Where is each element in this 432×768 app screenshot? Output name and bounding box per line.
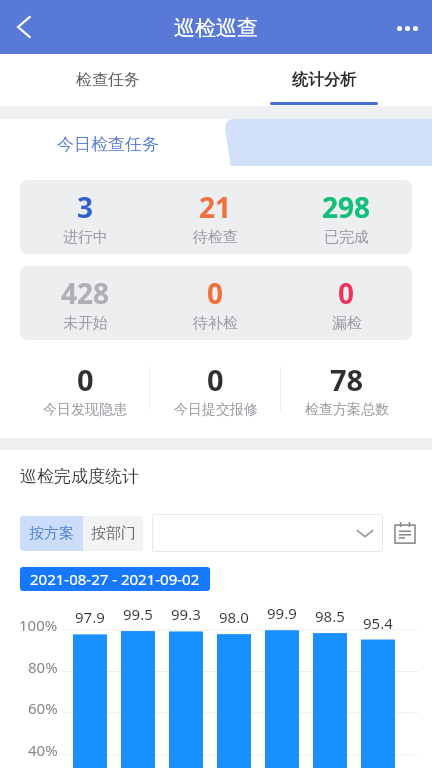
staticText: 已完成: [324, 228, 369, 247]
staticText: 检查任务: [76, 70, 140, 90]
button[interactable]: 0: [150, 340, 281, 438]
button[interactable]: 78: [281, 340, 412, 438]
staticText: 78: [330, 360, 364, 399]
button[interactable]: More options: [385, 5, 429, 49]
staticText: 进行中: [63, 228, 108, 247]
staticText: 漏检: [332, 314, 362, 333]
staticText: 2021-08-27 - 2021-09-02: [30, 569, 200, 589]
button[interactable]: 统计分析: [216, 54, 432, 106]
staticText: 0: [338, 274, 355, 312]
staticText: 未开始: [63, 314, 108, 333]
staticText: 298: [322, 188, 371, 226]
staticText: 0: [77, 360, 94, 399]
staticText: 95.4: [363, 613, 393, 633]
button[interactable]: 2021-08-27 - 2021-09-02: [20, 567, 210, 591]
staticText: 今日检查任务: [57, 134, 159, 155]
button[interactable]: [152, 514, 383, 552]
staticText: 今日发现隐患: [43, 401, 127, 419]
staticText: 98.0: [219, 607, 249, 627]
staticText: 3: [77, 188, 94, 226]
staticText: 100%: [19, 615, 58, 635]
staticText: 97.9: [75, 607, 105, 627]
staticText: 0: [207, 360, 224, 399]
staticText: 428: [61, 274, 110, 312]
button[interactable]: 按部门: [83, 516, 143, 551]
staticText: 0: [207, 274, 224, 312]
staticText: 21: [199, 188, 232, 226]
button[interactable]: 0: [20, 340, 150, 438]
button[interactable]: Report list: [392, 520, 418, 546]
staticText: 检查方案总数: [305, 401, 389, 419]
staticText: 99.5: [123, 604, 153, 624]
staticText: 今日提交报修: [174, 401, 258, 419]
staticText: 巡检巡查: [174, 15, 258, 41]
staticText: 待检查: [193, 228, 238, 247]
staticText: 按部门: [91, 524, 136, 543]
staticText: 待补检: [193, 314, 238, 333]
staticText: 80%: [28, 657, 58, 677]
staticText: 按方案: [29, 524, 74, 543]
button[interactable]: Back: [4, 5, 48, 49]
staticText: 98.5: [315, 606, 345, 626]
staticText: 统计分析: [292, 70, 356, 90]
staticText: 巡检完成度统计: [20, 466, 139, 487]
button[interactable]: 检查任务: [0, 54, 216, 106]
staticText: 60%: [28, 698, 58, 718]
staticText: 40%: [28, 740, 58, 760]
staticText: 99.9: [267, 603, 297, 623]
button[interactable]: 按方案: [20, 516, 83, 551]
staticText: 99.3: [171, 604, 201, 624]
